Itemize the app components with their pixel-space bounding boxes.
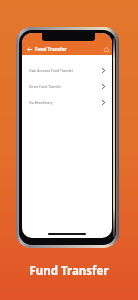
button[interactable]: Back (26, 46, 33, 53)
button[interactable]: Direct Fund Transfer (22, 78, 112, 94)
staticText: Direct Fund Transfer (29, 84, 62, 89)
staticText: Via Beneficiary (29, 100, 53, 105)
staticText: Fund Transfer (0, 263, 138, 279)
button[interactable]: Via Beneficiary (22, 94, 112, 110)
button[interactable]: Own Account Fund Transfer (22, 62, 112, 78)
button[interactable]: Home (103, 46, 110, 53)
staticText: Fund Transfer (35, 46, 67, 52)
staticText: Own Account Fund Transfer (29, 68, 74, 73)
